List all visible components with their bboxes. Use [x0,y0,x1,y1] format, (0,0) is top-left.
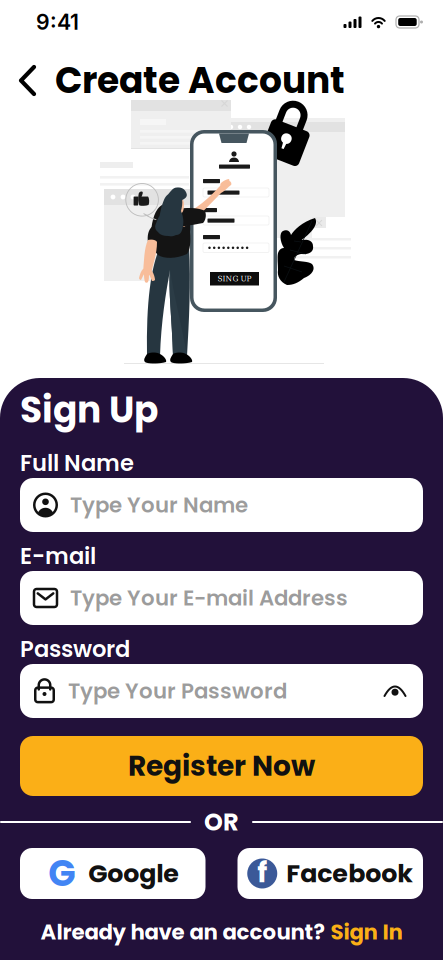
button[interactable]: Type Your Password [20,664,423,718]
staticText: 9:41 [36,9,79,35]
button[interactable]: Already have an account? [20,920,423,944]
staticText: Type Your Password [68,676,287,706]
button[interactable]: Type Your Name [20,478,423,532]
staticText: Type Your Name [70,490,248,520]
staticText: SING UP [217,274,251,283]
staticText: Create Account [55,55,345,106]
staticText: Sign Up [20,385,158,435]
button[interactable]: Back [0,60,55,101]
staticText: E-mail [20,540,96,572]
staticText: Sign In [330,917,402,947]
staticText: Type Your E-mail Address [70,583,348,613]
button[interactable]: G [20,848,205,899]
staticText: Full Name [20,447,134,479]
staticText: Already have an account? [40,917,324,947]
staticText: Register Now [128,746,315,786]
staticText: G [48,848,75,899]
staticText: Password [20,633,130,665]
staticText: OR [204,805,239,839]
button[interactable]: Register Now [20,736,423,796]
button[interactable]: Type Your E-mail Address [20,571,423,625]
button[interactable]: f [237,848,423,899]
staticText: f [257,853,267,892]
staticText: Google [88,856,179,891]
staticText: Facebook [286,856,413,891]
